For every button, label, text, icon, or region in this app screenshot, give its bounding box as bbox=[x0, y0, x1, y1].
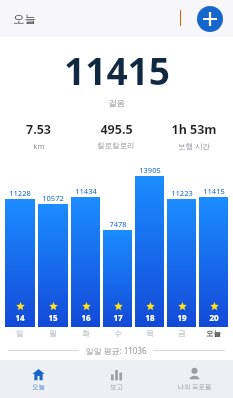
staticText: 11228 bbox=[9, 188, 31, 198]
staticText: 금 bbox=[178, 329, 186, 338]
staticText: 보고 bbox=[110, 383, 123, 391]
button[interactable]: 20 bbox=[199, 197, 228, 327]
button[interactable]: 16 bbox=[71, 197, 100, 327]
staticText: 15 bbox=[48, 312, 58, 323]
staticText: 일일 평균: 11036 bbox=[85, 345, 147, 356]
staticText: 걸음 bbox=[108, 98, 125, 109]
staticText: 7478 bbox=[109, 219, 127, 229]
staticText: 17 bbox=[113, 312, 123, 323]
button[interactable]: 19 bbox=[167, 199, 196, 327]
staticText: 10572 bbox=[42, 193, 64, 203]
staticText: 11434 bbox=[75, 186, 97, 196]
staticText: 월 bbox=[49, 329, 57, 338]
staticText: km bbox=[33, 141, 45, 151]
staticText: 20 bbox=[209, 312, 219, 323]
staticText: 보행 시간 bbox=[178, 141, 210, 151]
staticText: 오늘 bbox=[13, 12, 36, 26]
button[interactable]: 18 bbox=[135, 176, 164, 327]
staticText: 18 bbox=[145, 312, 155, 323]
staticText: 11415 bbox=[64, 45, 170, 95]
button[interactable]: 14 bbox=[5, 199, 35, 327]
staticText: 11223 bbox=[171, 188, 193, 198]
staticText: 오늘 bbox=[206, 329, 221, 338]
button[interactable]: Add bbox=[197, 6, 223, 32]
staticText: 495.5 bbox=[100, 121, 133, 138]
staticText: 7.53 bbox=[26, 121, 51, 138]
button[interactable]: 보고 bbox=[77, 360, 155, 398]
staticText: 일 bbox=[16, 329, 24, 338]
staticText: 14 bbox=[15, 312, 25, 323]
button[interactable]: 15 bbox=[38, 204, 68, 327]
staticText: 1h 53m bbox=[171, 121, 217, 138]
staticText: 13905 bbox=[139, 165, 161, 175]
staticText: 킬로칼로리 bbox=[97, 141, 135, 150]
staticText: 16 bbox=[81, 312, 91, 323]
staticText: 목 bbox=[146, 329, 154, 338]
staticText: 나의 프로필 bbox=[177, 382, 212, 391]
staticText: 11415 bbox=[203, 186, 225, 196]
button[interactable]: 17 bbox=[103, 230, 132, 327]
staticText: 수 bbox=[114, 329, 122, 338]
staticText: 화 bbox=[82, 329, 90, 338]
staticText: 오늘 bbox=[32, 383, 45, 391]
button[interactable]: 오늘 bbox=[0, 360, 77, 398]
button[interactable]: 나의 프로필 bbox=[155, 360, 233, 398]
staticText: 19 bbox=[177, 312, 187, 323]
